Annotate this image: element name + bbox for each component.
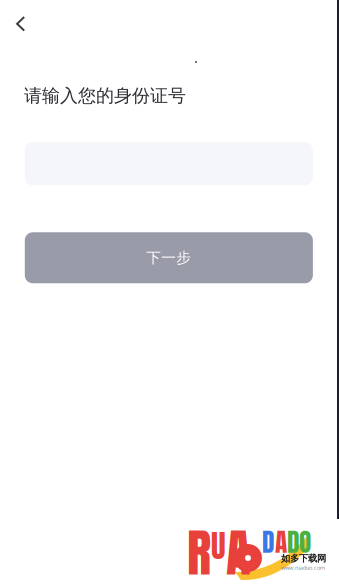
staticText: 下一步: [146, 248, 191, 267]
staticText: 请输入您的身份证号: [24, 84, 186, 107]
staticText: A: [275, 523, 287, 561]
staticText: R: [187, 515, 211, 587]
staticText: O: [299, 523, 311, 561]
staticText: A: [226, 515, 251, 587]
staticText: D: [287, 523, 299, 561]
button[interactable]: 下一步: [25, 232, 313, 283]
staticText: D: [262, 523, 274, 561]
staticText: U: [211, 523, 226, 569]
staticText: 如多下载网: [281, 553, 326, 564]
button[interactable]: Back: [0, 0, 41, 46]
staticText: www.ruaduo.com: [281, 564, 325, 571]
